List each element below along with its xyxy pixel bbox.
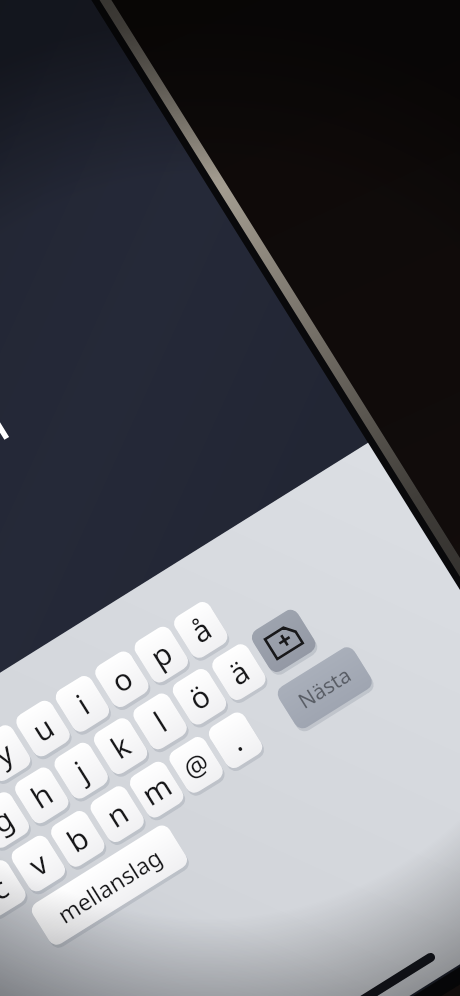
button[interactable]: Photo of a phone showing a Swedish keybo…	[0, 0, 460, 996]
